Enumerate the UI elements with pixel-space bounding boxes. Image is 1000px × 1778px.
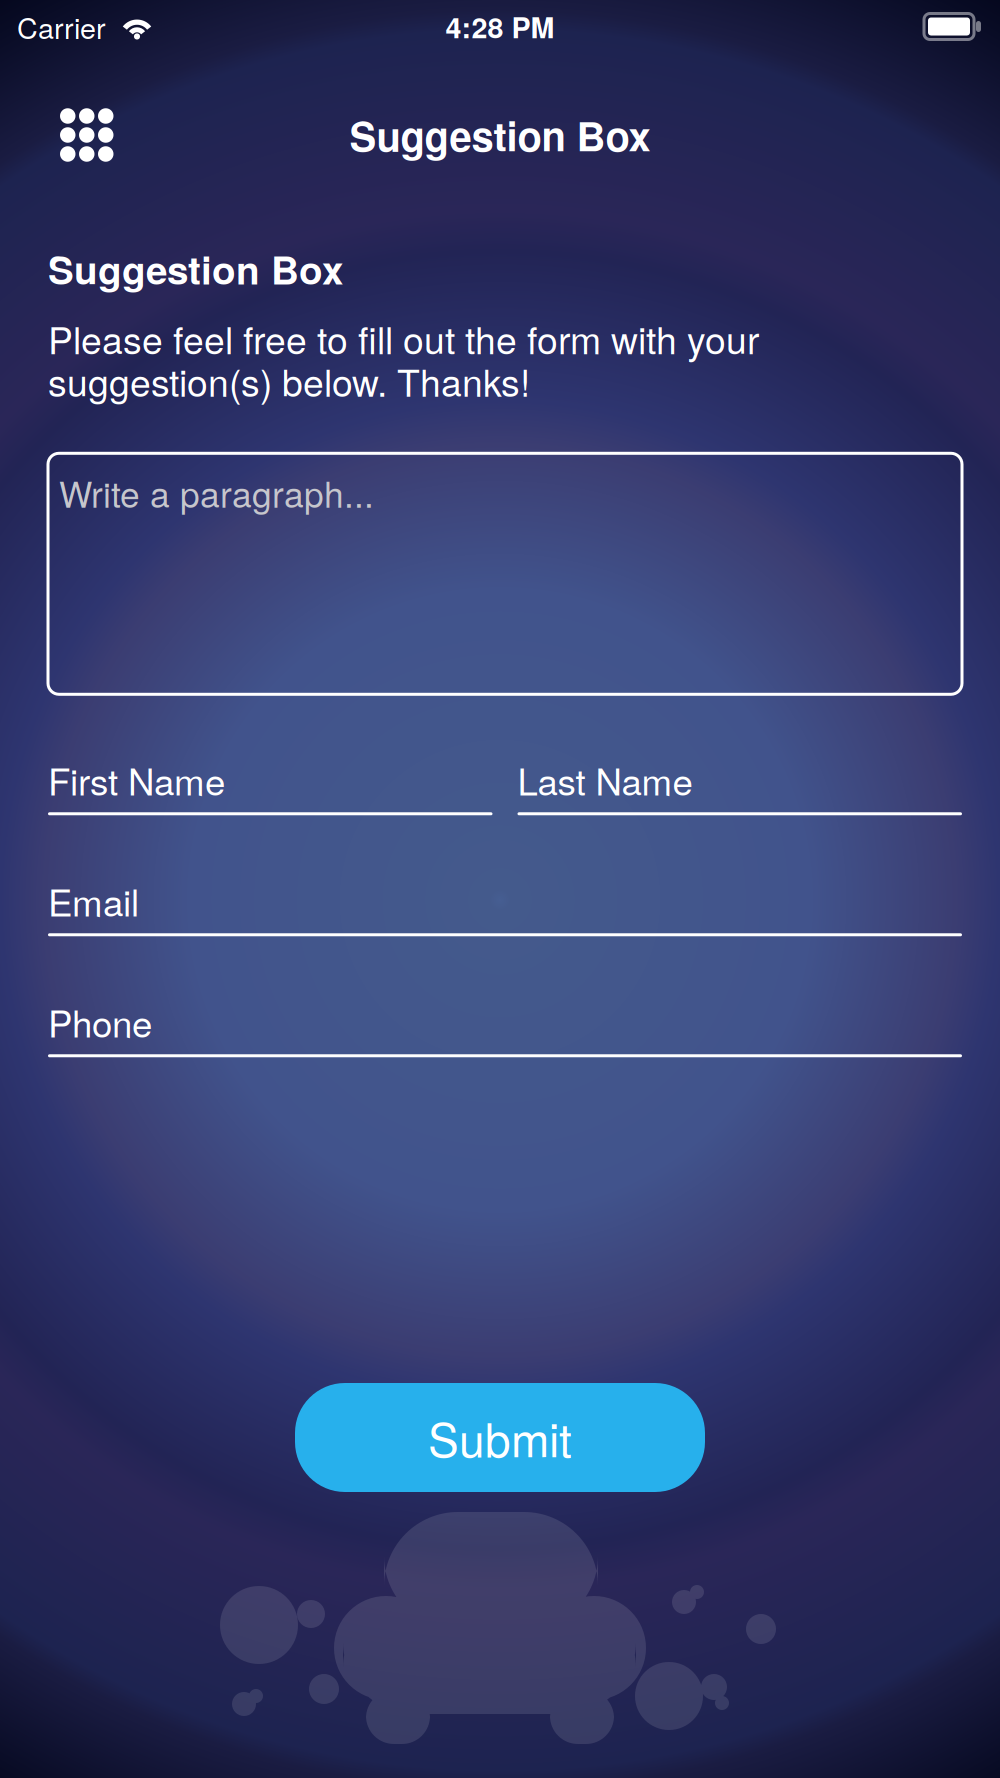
staticText: Suggestion Box xyxy=(349,106,650,164)
staticText: Last Name xyxy=(517,753,692,806)
staticText: Submit xyxy=(428,1405,572,1470)
staticText: Phone xyxy=(48,995,152,1048)
staticText: 4:28 PM xyxy=(445,6,554,47)
staticText: Write a paragraph... xyxy=(59,467,374,518)
staticText: Carrier xyxy=(17,6,106,47)
staticText: suggestion(s) below. Thanks! xyxy=(48,354,530,407)
button[interactable]: Submit xyxy=(295,1383,705,1492)
staticText: Email xyxy=(48,874,139,927)
staticText: Please feel free to fill out the form wi… xyxy=(48,311,759,365)
staticText: First Name xyxy=(48,753,225,806)
button[interactable]: Menu xyxy=(0,80,143,190)
staticText: Suggestion Box xyxy=(48,241,343,296)
